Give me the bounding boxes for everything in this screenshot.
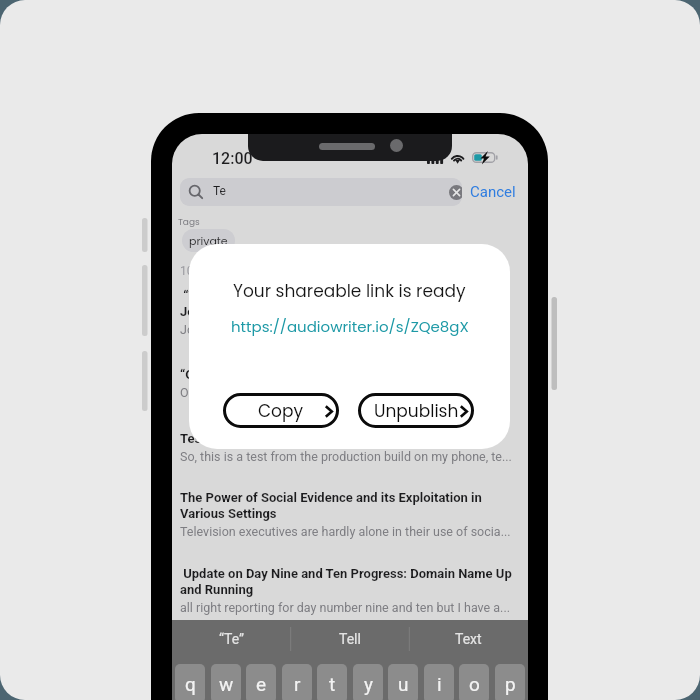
staticText: p — [505, 673, 516, 695]
button[interactable]: Unpublish — [358, 393, 474, 428]
staticText: Tell — [339, 631, 361, 647]
staticText: Te — [213, 184, 226, 198]
staticText: One must still have chaos in oneself to … — [180, 385, 483, 400]
button[interactable]: “One Must Still Have Chaos in Oneself” — [180, 367, 516, 400]
staticText: t — [329, 673, 336, 695]
button[interactable]: w — [211, 664, 241, 700]
button[interactable]: “Vincent van Gogh's Letter of 1889 to hi… — [180, 288, 516, 337]
button[interactable]: i — [424, 664, 454, 700]
staticText: “One Must Still Have Chaos in Oneself” — [180, 367, 408, 382]
button[interactable]: Update on Day Nine and Ten Progress: Dom… — [180, 566, 516, 615]
staticText: Television executives are hardly alone i… — [180, 524, 511, 539]
button[interactable]: Clear search text — [449, 185, 462, 200]
button[interactable]: private — [182, 229, 235, 252]
button[interactable]: Text — [409, 620, 528, 658]
staticText: q — [185, 673, 196, 695]
staticText: Text — [455, 631, 482, 647]
button[interactable]: y — [353, 664, 383, 700]
staticText: “Vincent van Gogh's Letter of 1889 to hi… — [180, 288, 505, 319]
button[interactable]: Copy — [223, 393, 339, 428]
staticText: e — [256, 673, 267, 695]
staticText: Testing the Production Build — [180, 431, 347, 446]
staticText: “Te” — [219, 631, 244, 647]
button[interactable]: Testing the Production Build — [180, 431, 516, 464]
staticText: o — [469, 673, 480, 695]
button[interactable]: t — [317, 664, 347, 700]
staticText: r — [294, 673, 301, 695]
staticText: private — [189, 233, 228, 248]
button[interactable]: u — [388, 664, 418, 700]
staticText: all right reporting for day number nine … — [180, 600, 510, 615]
staticText: So, this is a test from the production b… — [180, 449, 512, 464]
staticText: u — [398, 673, 409, 695]
button[interactable]: Te — [180, 178, 462, 206]
staticText: 12:00 — [212, 149, 253, 168]
staticText: Update on Day Nine and Ten Progress: Dom… — [180, 566, 516, 597]
button[interactable]: The Power of Social Evidence and its Exp… — [180, 490, 516, 539]
staticText: https://audiowriter.io/s/ZQe8gX — [231, 316, 469, 337]
staticText: Unpublish — [374, 399, 459, 423]
staticText: w — [219, 673, 234, 695]
button[interactable]: “Te” — [172, 620, 290, 658]
staticText: The Power of Social Evidence and its Exp… — [180, 490, 516, 521]
button[interactable]: p — [495, 664, 525, 700]
button[interactable]: q — [175, 664, 205, 700]
button[interactable]: e — [246, 664, 276, 700]
staticText: Copy — [258, 399, 304, 423]
staticText: Cancel — [470, 183, 516, 201]
staticText: Joy has vanished from my life and so thi… — [180, 322, 503, 337]
staticText: y — [364, 673, 373, 695]
button[interactable]: Cancel — [466, 178, 520, 206]
button[interactable]: Tell — [290, 620, 409, 658]
button[interactable]: o — [459, 664, 489, 700]
button[interactable]: r — [282, 664, 312, 700]
staticText: Your shareable link is ready — [233, 279, 466, 303]
staticText: i — [437, 673, 442, 695]
button[interactable]: https://audiowriter.io/s/ZQe8gX — [231, 316, 469, 337]
staticText: 10 results — [180, 264, 233, 278]
staticText: Tags — [178, 216, 200, 229]
